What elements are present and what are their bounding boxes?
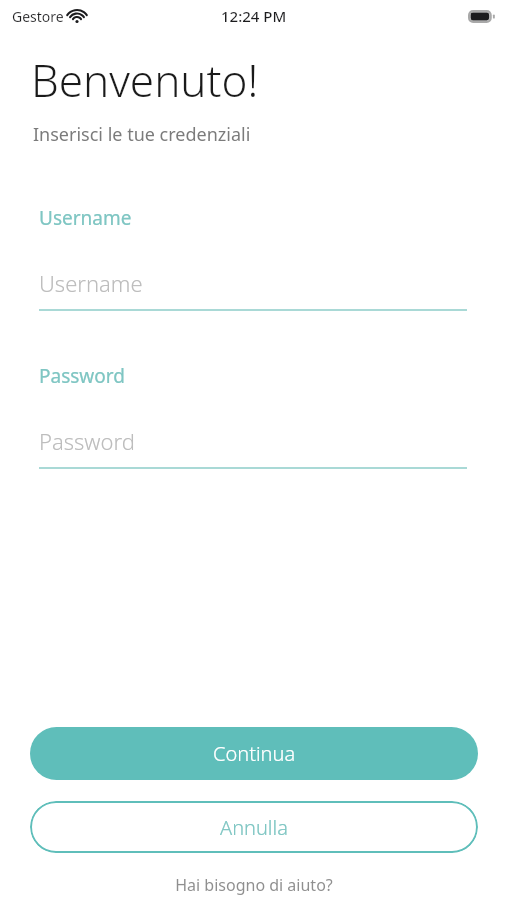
staticText: Gestore [12,7,64,26]
staticText: Inserisci le tue credenziali [33,122,251,147]
staticText: Password [39,363,125,389]
button[interactable]: Username [0,205,507,311]
staticText: Password [39,426,135,456]
other: Battery [468,10,495,23]
staticText: Username [39,205,132,231]
button[interactable]: Password [0,363,507,469]
staticText: Hai bisogno di aiuto? [175,874,333,896]
staticText: Username [39,268,143,298]
staticText: 12:24 PM [221,6,287,26]
staticText: Continua [213,740,296,767]
button[interactable]: Annulla [30,801,478,853]
staticText: Benvenuto! [31,50,259,110]
staticText: Annulla [220,814,288,841]
button[interactable]: Continua [30,727,478,780]
